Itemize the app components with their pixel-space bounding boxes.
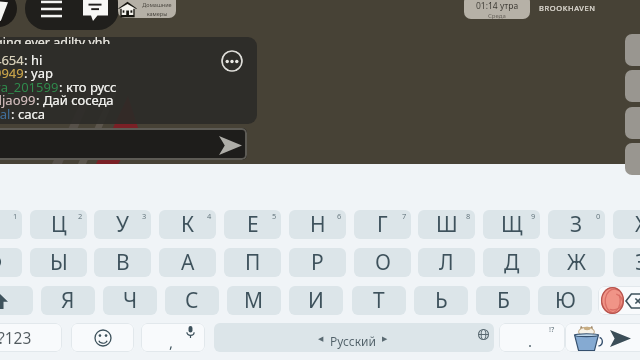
button[interactable]: Ж <box>548 248 605 277</box>
staticText: djao99 <box>0 91 36 109</box>
staticText: 1 <box>13 211 18 221</box>
button[interactable]: Emoji suggestion <box>601 287 624 314</box>
button[interactable]: Х <box>613 210 640 239</box>
button[interactable]: Side action 3 <box>625 107 640 139</box>
button[interactable]: Time <box>464 0 530 19</box>
button[interactable]: More options <box>221 50 243 72</box>
staticText: yap <box>31 64 53 82</box>
button[interactable]: Т <box>352 286 406 315</box>
staticText: hi <box>31 51 43 69</box>
staticText: Ж <box>567 248 587 277</box>
staticText: 01:14 утра <box>476 0 519 12</box>
button[interactable]: Chat <box>83 0 108 21</box>
staticText: Среда <box>488 12 506 19</box>
staticText: 4 <box>207 211 212 221</box>
staticText: Ц <box>51 210 67 239</box>
staticText: Русский <box>330 333 376 349</box>
staticText: 4654 <box>0 51 24 69</box>
button[interactable]: И <box>289 286 343 315</box>
staticText: Л <box>439 248 454 277</box>
button[interactable]: Side action 1 <box>625 34 640 66</box>
button[interactable]: К <box>159 210 216 239</box>
button[interactable]: Comma and voice input <box>141 323 205 352</box>
button[interactable]: Period <box>499 323 565 352</box>
staticText: 2 <box>78 211 83 221</box>
button[interactable]: Б <box>476 286 530 315</box>
button[interactable]: Д <box>483 248 540 277</box>
button[interactable]: Chat log <box>0 37 257 124</box>
staticText: Щ <box>501 210 523 239</box>
button[interactable]: П <box>224 248 281 277</box>
button[interactable]: Е <box>224 210 281 239</box>
button[interactable]: Menu <box>41 0 62 20</box>
button[interactable]: Ф <box>0 248 22 277</box>
staticText: Г <box>377 210 388 239</box>
staticText: !? <box>549 324 555 334</box>
button[interactable]: Щ <box>483 210 540 239</box>
staticText: Т <box>373 286 385 315</box>
staticText: Домашние камеры <box>139 1 175 18</box>
button[interactable]: А <box>159 248 216 277</box>
staticText: кто русс <box>66 78 117 96</box>
button[interactable]: Ы <box>30 248 87 277</box>
staticText: : <box>59 78 66 96</box>
button[interactable]: ?123 <box>0 323 62 352</box>
staticText: : <box>24 51 31 69</box>
button[interactable]: Я <box>41 286 95 315</box>
button[interactable]: Ц <box>30 210 87 239</box>
staticText: ?123 <box>0 327 32 348</box>
button[interactable]: З <box>548 210 605 239</box>
staticText: 9949 <box>0 64 24 82</box>
staticText: caca <box>18 105 46 123</box>
button[interactable]: Home cameras <box>118 0 176 18</box>
staticText: А <box>181 248 195 277</box>
button[interactable]: Ь <box>414 286 468 315</box>
staticText: Х <box>635 210 640 239</box>
staticText: 0 <box>596 211 601 221</box>
button[interactable]: М <box>227 286 281 315</box>
staticText: ▶ <box>382 335 388 343</box>
button[interactable]: Emoji <box>71 323 134 352</box>
button[interactable]: Ю <box>538 286 592 315</box>
button[interactable]: Г <box>354 210 411 239</box>
staticText: . <box>528 331 533 351</box>
staticText: М <box>244 286 264 315</box>
staticText: 5 <box>272 211 277 221</box>
staticText: И <box>308 286 324 315</box>
staticText: С <box>185 286 199 315</box>
button[interactable]: Э <box>613 248 640 277</box>
staticText: К <box>181 210 195 239</box>
button[interactable]: Ч <box>103 286 157 315</box>
button[interactable]: Shift <box>0 286 33 315</box>
button[interactable]: Л <box>418 248 475 277</box>
staticText: : <box>36 91 43 109</box>
button[interactable]: Й <box>0 210 22 239</box>
button[interactable]: Н <box>289 210 346 239</box>
button[interactable]: В <box>94 248 151 277</box>
staticText: Н <box>310 210 326 239</box>
staticText: ging ever adilty yhh <box>0 34 111 44</box>
button[interactable]: С <box>165 286 219 315</box>
staticText: Я <box>61 286 75 315</box>
button[interactable]: Side action 4 <box>625 143 640 175</box>
button[interactable]: О <box>354 248 411 277</box>
staticText: 6 <box>337 211 342 221</box>
staticText: Ч <box>123 286 138 315</box>
staticText: Дай соседа <box>43 91 114 109</box>
staticText: ya_201599 <box>0 78 59 96</box>
button[interactable]: Space <box>214 323 494 352</box>
button[interactable]: У <box>94 210 151 239</box>
button[interactable]: Side action 2 <box>625 70 640 102</box>
button[interactable]: Send <box>565 323 640 352</box>
button[interactable]: Chat input <box>0 128 247 160</box>
button[interactable]: Backpack <box>0 0 17 27</box>
button[interactable]: Backspace <box>598 286 640 315</box>
staticText: З <box>570 210 583 239</box>
staticText: 3 <box>142 211 147 221</box>
staticText: Ф <box>0 248 3 277</box>
staticText: П <box>245 248 261 277</box>
button[interactable]: Send message <box>217 133 245 157</box>
button[interactable]: Ш <box>418 210 475 239</box>
button[interactable]: Р <box>289 248 346 277</box>
